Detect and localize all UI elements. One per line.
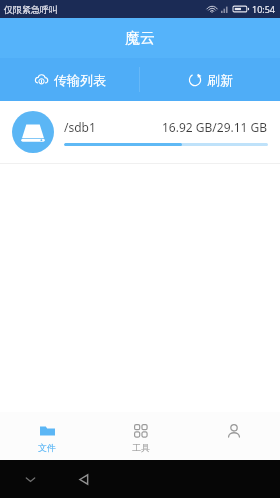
button[interactable]: /sdb1 <box>0 101 280 163</box>
staticText: 16.92 GB/29.11 GB <box>162 119 268 135</box>
staticText: 魔云 <box>125 29 155 48</box>
button[interactable]: 工具 <box>94 412 187 460</box>
button[interactable]: Back <box>70 466 96 492</box>
button[interactable]: 刷新 <box>140 58 280 101</box>
staticText: 传输列表 <box>54 72 106 88</box>
staticText: 工具 <box>132 442 150 453</box>
staticText: /sdb1 <box>64 119 96 135</box>
staticText: 刷新 <box>207 72 233 88</box>
button[interactable]: Hide keyboard <box>18 467 42 491</box>
staticText: 文件 <box>38 442 56 453</box>
button[interactable]: 文件 <box>0 412 94 460</box>
staticText: 仅限紧急呼叫 <box>4 4 58 15</box>
staticText: 10:54 <box>252 3 276 15</box>
button[interactable]: 传输列表 <box>0 58 139 101</box>
button[interactable]: 我的 <box>187 412 280 460</box>
